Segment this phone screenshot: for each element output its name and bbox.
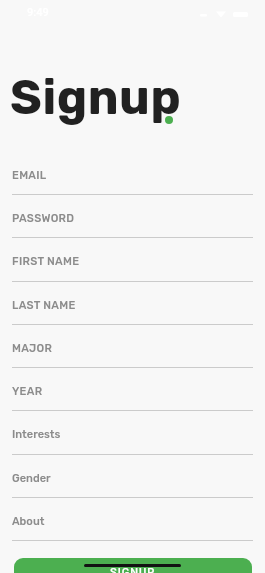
button[interactable]: MAJOR	[12, 324, 253, 367]
button[interactable]: PASSWORD	[12, 194, 253, 237]
staticText: PASSWORD	[12, 212, 75, 225]
staticText: EMAIL	[12, 169, 47, 182]
staticText: Gender	[12, 472, 51, 485]
staticText: FIRST NAME	[12, 255, 80, 268]
staticText: Interests	[12, 428, 61, 441]
staticText: YEAR	[12, 385, 43, 398]
button[interactable]: YEAR	[12, 367, 253, 410]
staticText: About	[12, 515, 45, 528]
button[interactable]: FIRST NAME	[12, 237, 253, 280]
staticText: MAJOR	[12, 342, 53, 355]
button[interactable]: About	[12, 497, 253, 540]
staticText: LAST NAME	[12, 299, 76, 312]
button[interactable]: Interests	[12, 410, 253, 453]
staticText: SIGNUP	[110, 566, 156, 573]
button[interactable]: EMAIL	[12, 151, 253, 194]
button[interactable]: Gender	[12, 454, 253, 497]
staticText: Signup	[10, 69, 182, 126]
button[interactable]: SIGNUP	[14, 558, 252, 573]
button[interactable]: LAST NAME	[12, 281, 253, 324]
